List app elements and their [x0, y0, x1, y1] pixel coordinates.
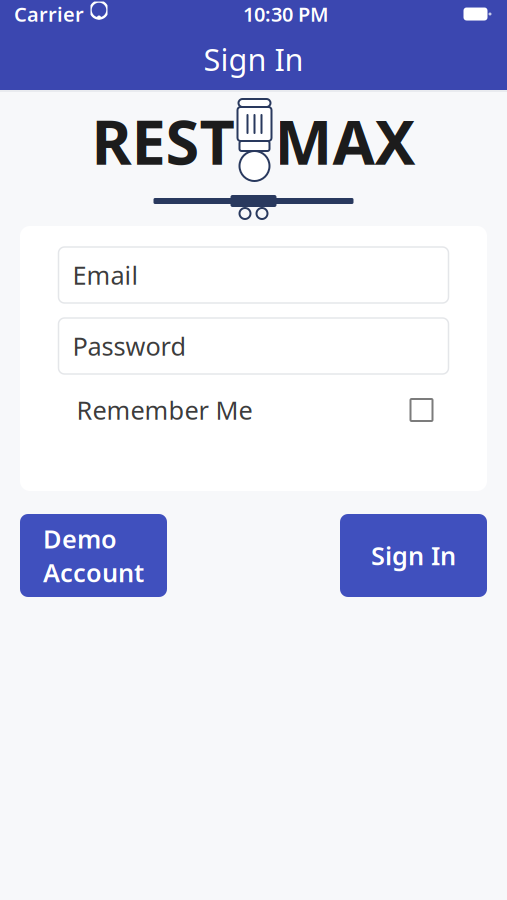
staticText: 10:30 PM: [243, 1, 329, 27]
button[interactable]: Remember Me: [58, 384, 448, 436]
staticText: MAX: [274, 100, 415, 182]
staticText: Password: [72, 329, 186, 363]
button[interactable]: Demo Account: [20, 514, 167, 597]
staticText: Sign In: [371, 539, 456, 572]
staticText: Sign In: [203, 39, 303, 79]
staticText: Remember Me: [76, 393, 252, 427]
staticText: REST: [91, 100, 234, 182]
staticText: Demo Account: [43, 522, 144, 589]
button[interactable]: Sign In: [340, 514, 487, 597]
staticText: Carrier: [14, 1, 84, 27]
staticText: Email: [72, 258, 138, 292]
